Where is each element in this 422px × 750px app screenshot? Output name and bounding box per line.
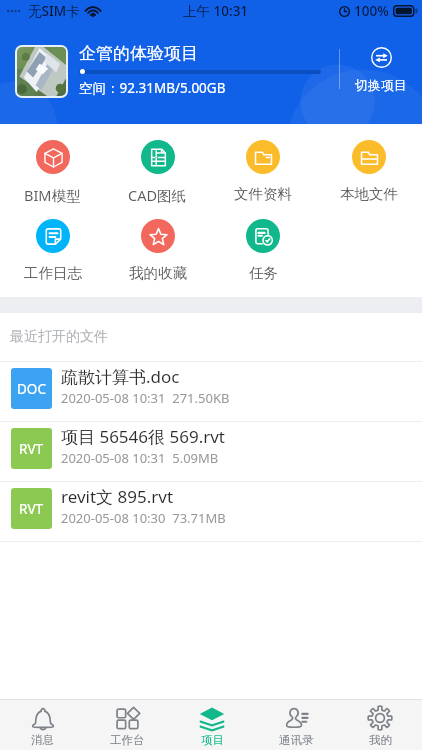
button[interactable]: 通讯录 (254, 700, 338, 750)
staticText: 文件资料 (234, 185, 292, 203)
button[interactable]: 文件资料 (210, 124, 316, 203)
staticText: 通讯录 (279, 733, 314, 747)
button[interactable]: 工作台 (85, 700, 170, 750)
button[interactable]: 项目 (170, 700, 254, 750)
staticText: 我的收藏 (129, 264, 187, 282)
button[interactable]: BIM模型 (0, 124, 105, 203)
staticText: 消息 (31, 733, 54, 747)
staticText: 项目 56546很 569.rvt (61, 425, 225, 448)
staticText: BIM模型 (24, 185, 81, 203)
button[interactable]: 消息 (0, 700, 85, 750)
staticText: 空间：92.31MB/5.00GB (79, 79, 226, 97)
button[interactable]: 工作日志 (0, 203, 105, 297)
button[interactable]: 任务 (210, 203, 316, 297)
button[interactable]: DOC (0, 362, 422, 421)
staticText: RVT (19, 440, 44, 458)
button[interactable]: 我的收藏 (105, 203, 210, 297)
staticText: 2020-05-08 10:31 5.09MB (61, 449, 219, 467)
staticText: 工作台 (110, 733, 145, 747)
other: 切换项目 (371, 47, 392, 68)
staticText: 疏散计算书.doc (61, 365, 180, 388)
staticText: 切换项目 (355, 77, 407, 93)
staticText: 任务 (249, 264, 278, 282)
staticText: 2020-05-08 10:30 73.71MB (61, 509, 226, 527)
staticText: 2020-05-08 10:31 271.50KB (61, 389, 230, 407)
staticText: 项目 (201, 733, 224, 747)
staticText: CAD图纸 (128, 185, 187, 203)
staticText: 上午 10:31 (183, 2, 249, 20)
button[interactable]: RVT (0, 482, 422, 541)
staticText: 企管的体验项目 (79, 43, 198, 64)
staticText: 最近打开的文件 (10, 328, 108, 346)
staticText: 本地文件 (340, 185, 398, 203)
staticText: 100% (354, 2, 389, 20)
button[interactable]: 本地文件 (316, 124, 422, 203)
button[interactable]: 我的 (338, 700, 422, 750)
staticText: 无SIM卡 (28, 2, 80, 20)
button[interactable]: RVT (0, 422, 422, 481)
staticText: revit文 895.rvt (61, 485, 174, 508)
staticText: 工作日志 (24, 264, 82, 282)
button[interactable]: CAD图纸 (105, 124, 210, 203)
button[interactable]: 切换项目 (340, 43, 422, 93)
staticText: 我的 (369, 733, 392, 747)
staticText: RVT (19, 500, 44, 518)
staticText: DOC (17, 380, 46, 398)
